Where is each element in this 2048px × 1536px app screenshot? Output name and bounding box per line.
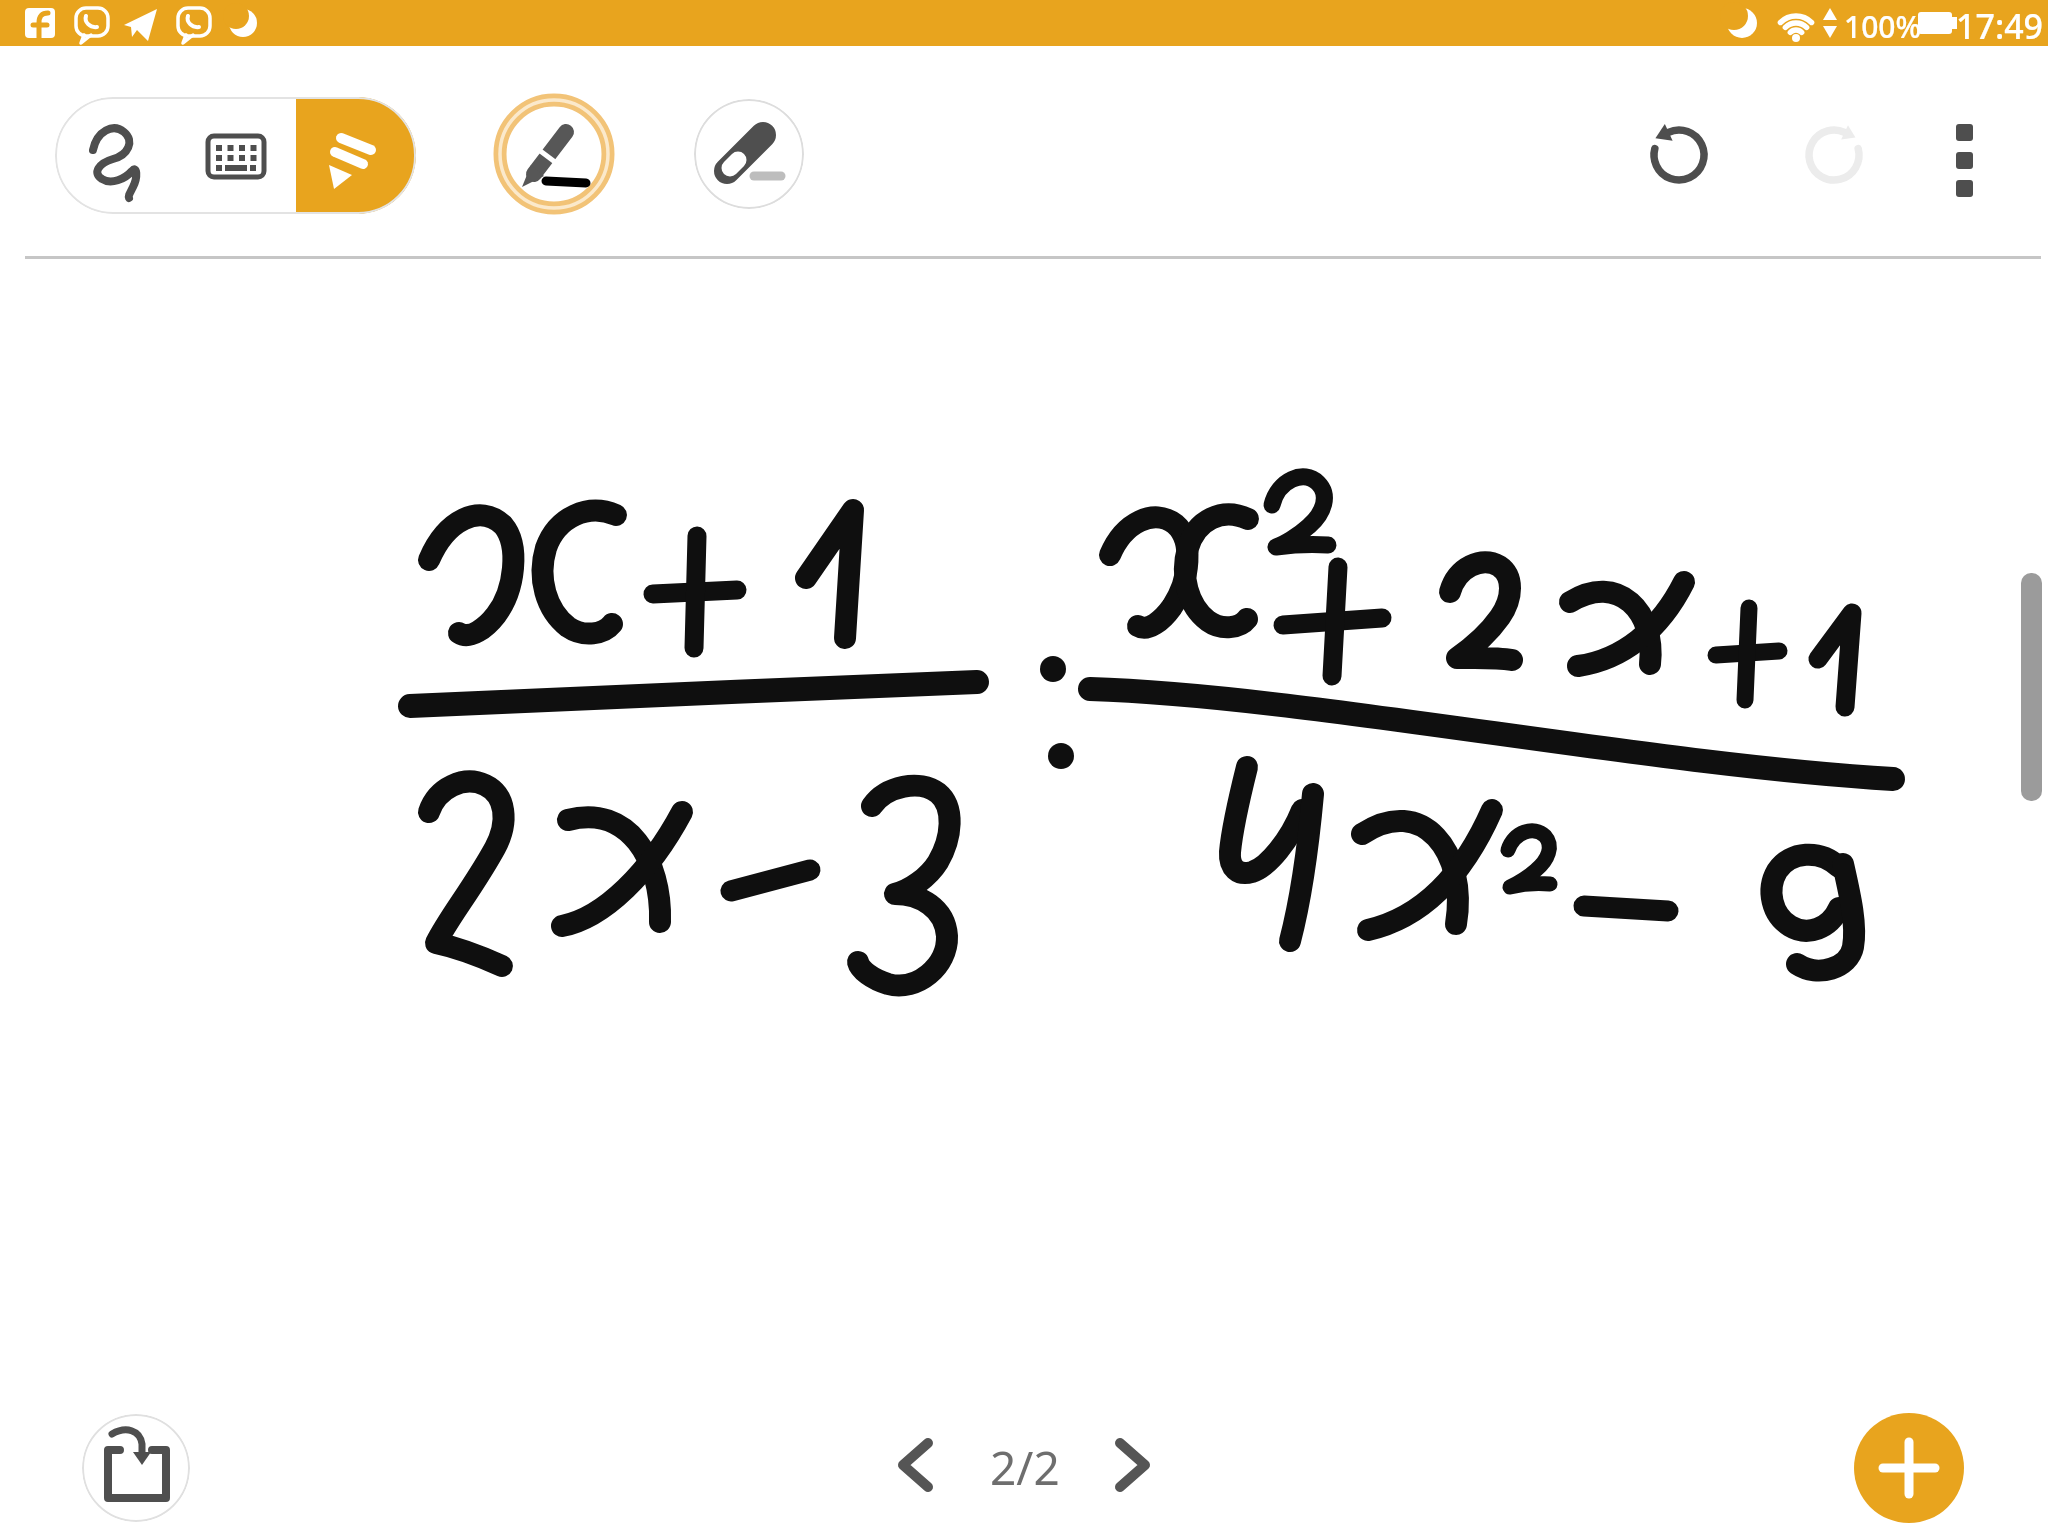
button[interactable] <box>1940 124 1988 212</box>
button[interactable] <box>1800 121 1868 189</box>
staticText: 17:49 <box>1956 3 2044 49</box>
button[interactable] <box>55 97 176 214</box>
button[interactable] <box>694 99 804 209</box>
button[interactable] <box>892 1435 938 1495</box>
button[interactable] <box>82 1414 190 1522</box>
button[interactable] <box>494 94 614 214</box>
button[interactable] <box>1110 1435 1156 1495</box>
staticText: 2/2 <box>990 1436 1060 1499</box>
staticText: 100% <box>1844 6 1922 47</box>
button[interactable] <box>1854 1413 1964 1523</box>
button[interactable] <box>176 97 296 214</box>
button[interactable] <box>1645 121 1713 189</box>
button[interactable] <box>296 97 416 214</box>
